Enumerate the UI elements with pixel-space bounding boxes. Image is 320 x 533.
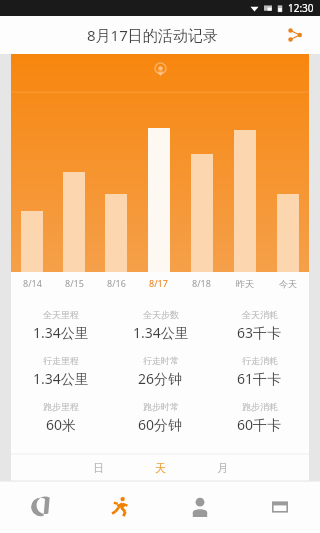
- staticText: 1.34公里: [33, 369, 89, 388]
- staticText: 全天里程: [43, 309, 79, 320]
- staticText: 天: [155, 461, 166, 475]
- staticText: 8/14: [23, 277, 42, 289]
- staticText: 行走消耗: [242, 355, 278, 366]
- staticText: 今天: [279, 278, 297, 289]
- staticText: 日: [93, 461, 104, 475]
- button[interactable]: [137, 54, 180, 272]
- button[interactable]: 跑步里程: [11, 394, 111, 440]
- button[interactable]: 行走里程: [11, 348, 111, 394]
- button[interactable]: [11, 54, 53, 272]
- button[interactable]: Profile: [160, 481, 240, 533]
- button[interactable]: Share: [278, 18, 312, 52]
- staticText: 12:30: [288, 1, 314, 15]
- button[interactable]: Sleep: [0, 481, 80, 533]
- button[interactable]: 天: [147, 455, 173, 481]
- staticText: 63千卡: [237, 323, 282, 342]
- button[interactable]: 跑步消耗: [210, 394, 309, 440]
- staticText: 全天步数: [143, 309, 179, 320]
- staticText: 1.34公里: [133, 323, 189, 342]
- button[interactable]: [180, 54, 223, 272]
- staticText: 跑步时常: [143, 401, 179, 412]
- button[interactable]: 日: [85, 455, 111, 481]
- button[interactable]: [53, 54, 95, 272]
- button[interactable]: 月: [209, 455, 235, 481]
- button[interactable]: 行走消耗: [210, 348, 309, 394]
- staticText: 8/18: [192, 277, 211, 289]
- staticText: 60分钟: [138, 415, 183, 434]
- button[interactable]: [95, 54, 137, 272]
- button[interactable]: 全天里程: [11, 302, 111, 348]
- button[interactable]: Device: [240, 481, 320, 533]
- staticText: 61千卡: [237, 369, 282, 388]
- staticText: 8/16: [107, 277, 126, 289]
- staticText: 行走时常: [143, 355, 179, 366]
- staticText: 月: [217, 461, 228, 475]
- button[interactable]: [266, 54, 309, 272]
- staticText: 跑步里程: [43, 401, 79, 412]
- staticText: 60千卡: [237, 415, 282, 434]
- button[interactable]: [223, 54, 266, 272]
- staticText: 全天消耗: [242, 309, 278, 320]
- staticText: 8/17: [149, 277, 168, 289]
- button[interactable]: 全天消耗: [210, 302, 309, 348]
- button[interactable]: 全天步数: [111, 302, 210, 348]
- staticText: 1.34公里: [33, 323, 89, 342]
- staticText: 8/15: [65, 277, 84, 289]
- button[interactable]: 行走时常: [111, 348, 210, 394]
- staticText: 昨天: [236, 278, 254, 289]
- button[interactable]: Activity: [80, 481, 160, 533]
- staticText: 8月17日的活动记录: [87, 25, 218, 45]
- button[interactable]: 跑步时常: [111, 394, 210, 440]
- staticText: 26分钟: [138, 369, 183, 388]
- staticText: 60米: [46, 415, 77, 434]
- staticText: 行走里程: [43, 355, 79, 366]
- staticText: 跑步消耗: [242, 401, 278, 412]
